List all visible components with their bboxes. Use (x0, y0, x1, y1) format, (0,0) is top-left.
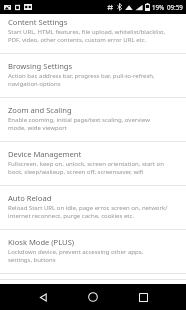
staticText: Start URL, HTML features, file upload, w… (8, 28, 166, 44)
staticText: Auto Reload (8, 193, 52, 203)
button[interactable]: Zoom and Scaling (0, 98, 186, 142)
button[interactable]: Kiosk Mode (PLUS) (0, 230, 186, 274)
staticText: Enable zooming, initial page/text scalin… (8, 116, 150, 132)
staticText: Action bar, address bar, progress bar, p… (8, 72, 155, 88)
button[interactable]: Motion Detection (PLUS) (0, 274, 186, 280)
staticText: Content Settings (8, 17, 68, 27)
button[interactable]: Back (30, 284, 56, 310)
staticText: 19% (152, 3, 165, 11)
staticText: Kiosk Mode (PLUS) (8, 237, 75, 247)
staticText: Device Management (8, 149, 82, 159)
button[interactable]: Browsing Settings (0, 54, 186, 98)
staticText: Fullscreen, keep on, unlock, screen orie… (8, 160, 164, 176)
staticText: 09:59 (167, 3, 183, 11)
staticText: Reload Start URL on idle, page error, sc… (8, 204, 168, 220)
button[interactable]: Recent apps (130, 284, 156, 310)
button[interactable]: Content Settings (0, 14, 186, 54)
staticText: Browsing Settings (8, 61, 73, 71)
staticText: Zoom and Scaling (8, 105, 72, 115)
button[interactable]: Home (80, 284, 106, 310)
button[interactable]: Device Management (0, 142, 186, 186)
staticText: Lockdown device, prevent accessing other… (8, 248, 144, 264)
button[interactable]: Auto Reload (0, 186, 186, 230)
